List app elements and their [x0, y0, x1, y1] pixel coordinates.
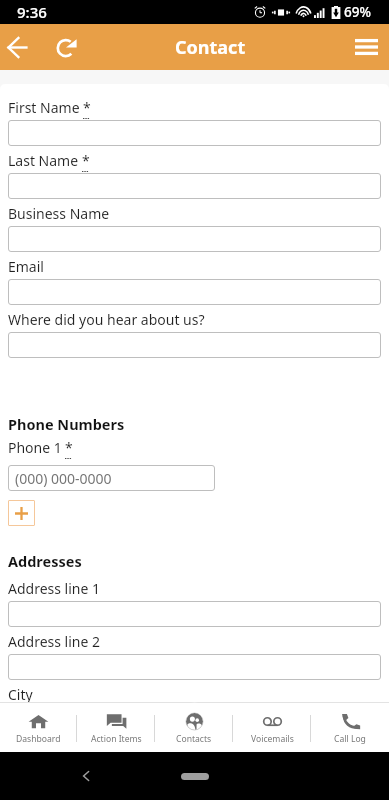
- staticText: Phone Numbers: [8, 414, 125, 434]
- staticText: Contacts: [176, 733, 212, 745]
- staticText: (000) 000-0000: [15, 469, 112, 488]
- button[interactable]: Contacts: [155, 703, 233, 752]
- staticText: Email: [8, 257, 44, 276]
- staticText: Last Name: [8, 151, 79, 170]
- staticText: Call Log: [334, 733, 366, 745]
- staticText: Business Name: [8, 204, 110, 223]
- button[interactable]: Menu: [343, 24, 389, 70]
- button[interactable]: [8, 654, 381, 680]
- staticText: Voicemails: [251, 733, 294, 745]
- button[interactable]: [8, 120, 381, 146]
- button[interactable]: Add phone number: [8, 500, 35, 526]
- staticText: First Name: [8, 98, 80, 117]
- staticText: Phone 1: [8, 438, 62, 457]
- staticText: Address line 2: [8, 632, 101, 651]
- button[interactable]: [8, 279, 381, 305]
- button[interactable]: [8, 173, 381, 199]
- staticText: Address line 1: [8, 579, 101, 598]
- staticText: *: [83, 98, 91, 117]
- staticText: Addresses: [8, 551, 82, 571]
- staticText: 9:36: [17, 2, 47, 22]
- button[interactable]: Call Log: [311, 703, 389, 752]
- button[interactable]: Voicemails: [233, 703, 311, 752]
- staticText: Where did you hear about us?: [8, 310, 205, 329]
- staticText: City: [8, 685, 33, 702]
- button[interactable]: (000) 000-0000: [8, 465, 215, 491]
- staticText: *: [82, 151, 90, 170]
- button[interactable]: Dashboard: [0, 703, 77, 752]
- staticText: 69%: [344, 3, 371, 21]
- staticText: Dashboard: [16, 733, 61, 745]
- button[interactable]: [8, 601, 381, 627]
- staticText: *: [65, 438, 73, 457]
- button[interactable]: Action Items: [77, 703, 155, 752]
- button[interactable]: Back: [0, 24, 36, 70]
- staticText: Contact: [175, 35, 246, 60]
- button[interactable]: Refresh: [51, 24, 82, 70]
- staticText: Action Items: [91, 733, 142, 745]
- button[interactable]: [8, 332, 381, 358]
- button[interactable]: [8, 226, 381, 252]
